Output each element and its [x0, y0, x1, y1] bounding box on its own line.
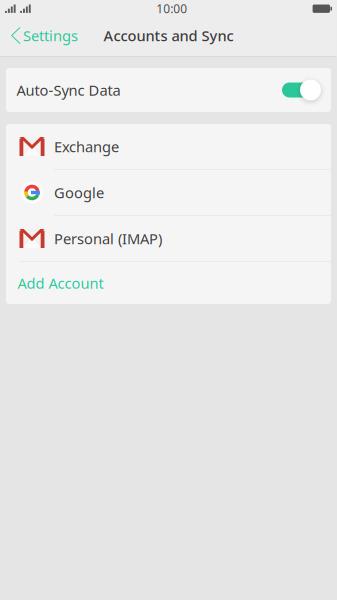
button[interactable]: Settings — [0, 18, 86, 53]
staticText: Accounts and Sync — [103, 26, 233, 45]
staticText: 10:00 — [156, 1, 187, 17]
button[interactable]: Exchange — [6, 124, 331, 169]
staticText: Personal (IMAP) — [54, 229, 162, 248]
button[interactable]: Add Account — [6, 262, 331, 304]
button[interactable]: Personal (IMAP) — [6, 216, 331, 261]
staticText: Add Account — [17, 273, 103, 293]
button[interactable]: Google — [6, 170, 331, 215]
staticText: Google — [54, 183, 104, 202]
staticText: Auto-Sync Data — [16, 80, 120, 100]
staticText: Exchange — [54, 137, 119, 156]
staticText: Settings — [23, 26, 78, 45]
